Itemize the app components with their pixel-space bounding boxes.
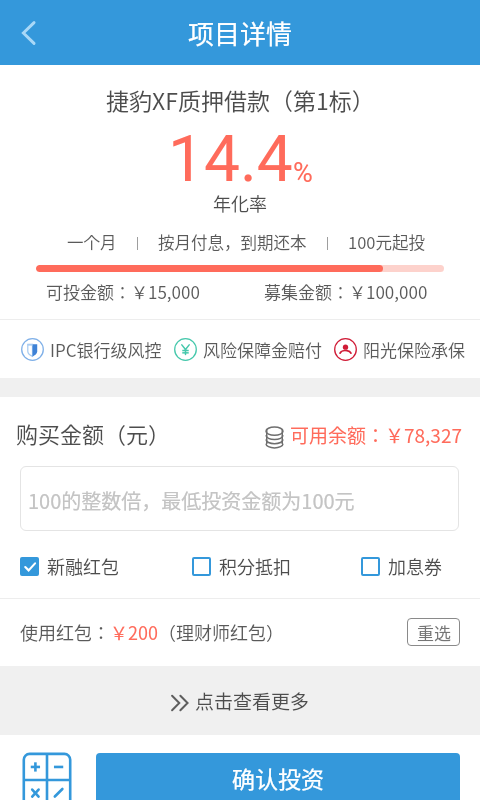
staticText: 可投金额：￥15,000 [46,279,200,304]
button[interactable]: 阳光保险承保 [334,337,465,362]
button[interactable]: 100的整数倍，最低投资金额为100元 [20,466,459,531]
staticText: 风险保障金赔付 [203,337,322,362]
staticText: 募集金额：￥100,000 [264,279,428,304]
button[interactable]: 新融红包 [20,553,119,579]
staticText: 点击查看更多 [195,687,310,715]
staticText: 确认投资 [232,761,324,794]
staticText: % [293,157,313,189]
staticText: 使用红包： [20,619,110,645]
button[interactable]: 风险保障金赔付 [174,337,322,362]
staticText: 按月付息，到期还本 [158,230,307,254]
button[interactable]: 积分抵扣 [192,553,291,579]
staticText: （理财师红包） [158,619,284,645]
staticText: ￥200 [110,619,158,645]
staticText: 加息券 [388,553,442,579]
button[interactable]: Calculator [18,751,76,800]
staticText: 100的整数倍，最低投资金额为100元 [28,486,355,515]
staticText: 项目详情 [188,14,293,52]
staticText: 100元起投 [348,230,425,254]
staticText: 阳光保险承保 [363,337,465,362]
button[interactable]: 点击查看更多 [0,666,480,735]
staticText: IPC银行级风控 [50,337,162,362]
button[interactable]: 重选 [407,618,460,646]
staticText: 年化率 [213,190,267,216]
staticText: 14.4 [168,122,293,197]
button[interactable]: IPC银行级风控 [21,337,162,362]
staticText: 积分抵扣 [219,553,291,579]
staticText: 可用余额：￥78,327 [290,421,463,449]
staticText: 一个月 [67,230,117,254]
button[interactable]: 加息券 [361,553,442,579]
staticText: 新融红包 [47,553,119,579]
button[interactable]: 确认投资 [96,753,460,800]
button[interactable]: Back [0,0,58,65]
staticText: 重选 [417,620,451,645]
staticText: 购买金额（元） [16,417,171,449]
staticText: 捷豹XF质押借款（第1标） [106,83,375,116]
